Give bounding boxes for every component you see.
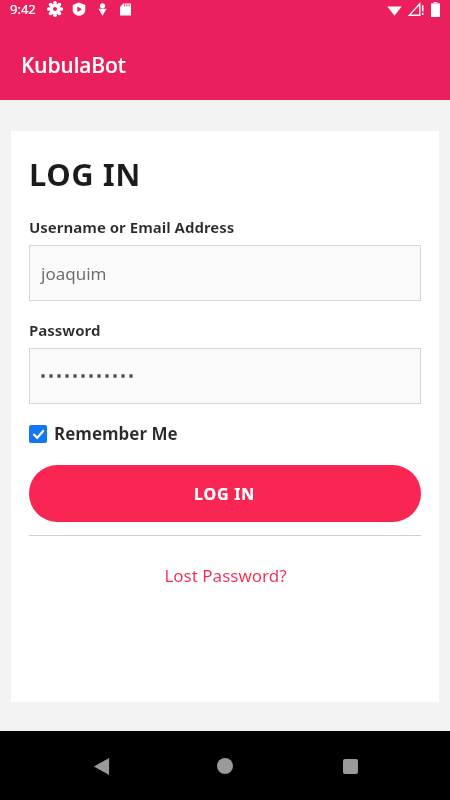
button[interactable]: LOG IN — [29, 465, 421, 522]
staticText: Username or Email Address — [29, 217, 235, 237]
button[interactable]: Recent apps — [326, 742, 374, 790]
button[interactable]: Lost Password? — [29, 564, 421, 587]
button[interactable]: joaquim — [29, 245, 421, 301]
staticText: Remember Me — [54, 422, 178, 445]
staticText: joaquim — [41, 262, 107, 285]
staticText: LOG IN — [194, 483, 256, 505]
button[interactable] — [29, 348, 421, 404]
staticText: LOG IN — [29, 153, 141, 195]
staticText: Lost Password? — [164, 564, 287, 587]
button[interactable]: Remember Me — [29, 422, 178, 445]
button[interactable]: Home — [201, 742, 249, 790]
staticText: Password — [29, 320, 101, 340]
staticText: 9:42 — [10, 0, 36, 18]
button[interactable]: Back — [77, 742, 125, 790]
staticText: KubulaBot — [21, 51, 126, 80]
